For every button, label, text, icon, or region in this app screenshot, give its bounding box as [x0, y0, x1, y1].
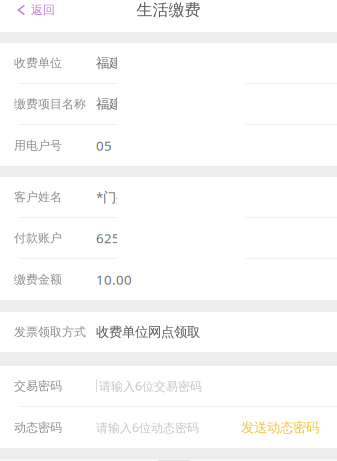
staticText: 请输入6位交易密码 [99, 378, 202, 394]
staticText: *门生 [96, 188, 129, 206]
button[interactable]: 发送动态密码 [232, 410, 328, 445]
staticText: 缴费项目名称 [14, 97, 86, 111]
staticText: 交易密码 [14, 379, 62, 393]
staticText: 福建省电费 [96, 96, 161, 112]
staticText: 动态密码 [14, 420, 62, 435]
staticText: 福建省电力公司 [96, 55, 187, 71]
staticText: 收费单位 [14, 56, 62, 70]
staticText: 05 [96, 137, 112, 154]
staticText: 请输入6位动态密码 [96, 419, 199, 435]
staticText: 客户姓名 [14, 190, 62, 204]
staticText: 6255881234567 [96, 229, 200, 247]
staticText: 用电户号 [14, 138, 62, 153]
staticText: 付款账户 [14, 231, 62, 245]
staticText: 发送动态密码 [241, 419, 319, 436]
staticText: 生活缴费 [136, 0, 200, 20]
button[interactable]: 返回 [0, 0, 67, 20]
staticText: 10.00 [96, 271, 132, 288]
staticText: 发票领取方式 [14, 325, 86, 339]
staticText: 收费单位网点领取 [96, 324, 200, 340]
staticText: 返回 [31, 3, 55, 17]
button[interactable]: 确认缴费 [0, 459, 337, 461]
staticText: 缴费金额 [14, 272, 62, 287]
